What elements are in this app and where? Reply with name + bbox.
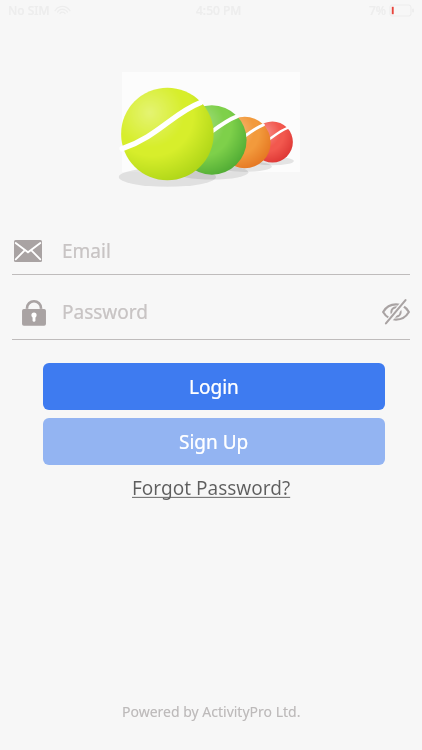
staticText: 4:50 PM — [196, 2, 242, 18]
button[interactable]: Email — [0, 228, 422, 274]
button[interactable]: Show password — [374, 290, 418, 334]
button[interactable]: Forgot Password? — [126, 473, 297, 503]
staticText: Forgot Password? — [132, 475, 291, 501]
staticText: 7% — [369, 2, 387, 18]
button[interactable]: Password — [14, 292, 54, 332]
staticText: Password — [62, 299, 148, 325]
staticText: Email — [62, 238, 111, 264]
staticText: No SIM — [8, 2, 50, 18]
button[interactable]: Sign Up — [43, 418, 385, 465]
button[interactable]: Login — [43, 363, 385, 410]
staticText: Login — [189, 374, 239, 400]
staticText: Powered by ActivityPro Ltd. — [122, 702, 301, 721]
staticText: Sign Up — [179, 429, 249, 455]
